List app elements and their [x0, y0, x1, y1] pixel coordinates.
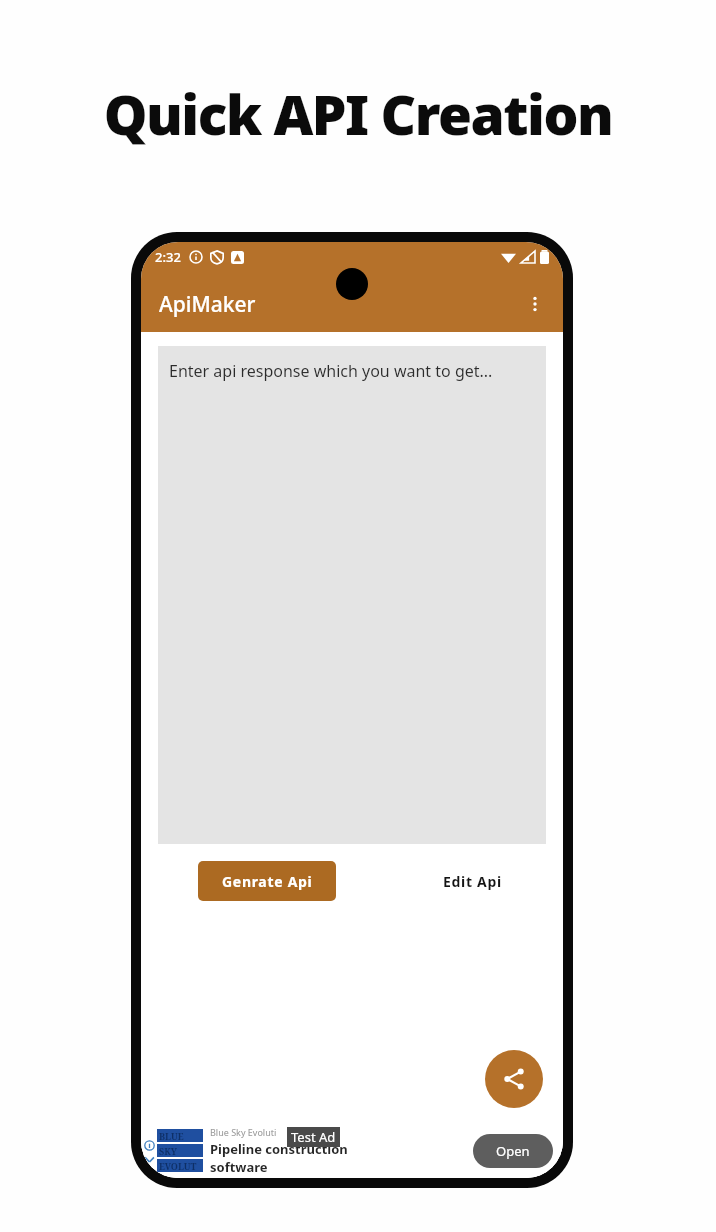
staticText: Pipeline construction — [210, 1140, 348, 1158]
button[interactable]: Enter api response which you want to get… — [158, 346, 546, 844]
staticText: ApiMaker — [159, 290, 256, 319]
staticText: EVOLUT — [159, 1160, 197, 1172]
staticText: Test Ad — [291, 1128, 336, 1146]
staticText: Edit Api — [443, 872, 502, 891]
staticText: Open — [496, 1142, 530, 1160]
button[interactable]: Edit Api — [414, 861, 530, 901]
staticText: Enter api response which you want to get… — [169, 360, 493, 382]
staticText: 2:32 — [155, 248, 181, 266]
staticText: Genrate Api — [222, 872, 313, 891]
button[interactable]: Genrate Api — [198, 861, 336, 901]
button[interactable]: Share — [485, 1050, 543, 1108]
staticText: SKY — [159, 1145, 178, 1157]
staticText: software — [210, 1158, 268, 1176]
button[interactable]: Open — [473, 1134, 553, 1168]
staticText: BLUE — [159, 1130, 184, 1142]
staticText: Blue Sky Evoluti — [210, 1126, 277, 1138]
button[interactable]: More options — [515, 284, 555, 324]
staticText: Quick API Creation — [0, 76, 716, 151]
button[interactable]: BLUE — [141, 1124, 563, 1178]
